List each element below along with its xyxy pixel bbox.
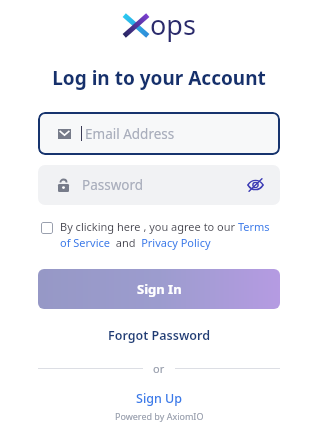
button[interactable]: Agree checkbox (41, 219, 277, 250)
button[interactable]: Email Address (38, 112, 280, 155)
button[interactable]: Show password (244, 174, 266, 196)
staticText: By clicking here , you agree to our Term… (60, 219, 277, 250)
other: Agree checkbox (41, 222, 53, 234)
staticText: ops (150, 6, 196, 43)
staticText: Log in to your Account (52, 65, 266, 91)
staticText: Sign Up (136, 390, 183, 407)
staticText: Forgot Password (108, 327, 211, 344)
button[interactable]: Password (38, 165, 280, 205)
staticText: Email Address (85, 125, 175, 143)
button[interactable]: Forgot Password (100, 324, 219, 347)
staticText: Powered by AxiomIO (115, 410, 204, 422)
staticText: Sign In (137, 280, 182, 298)
staticText: or (153, 361, 165, 376)
staticText: Password (82, 176, 144, 194)
button[interactable]: Sign In (38, 269, 280, 309)
button[interactable]: Sign Up (128, 387, 191, 410)
